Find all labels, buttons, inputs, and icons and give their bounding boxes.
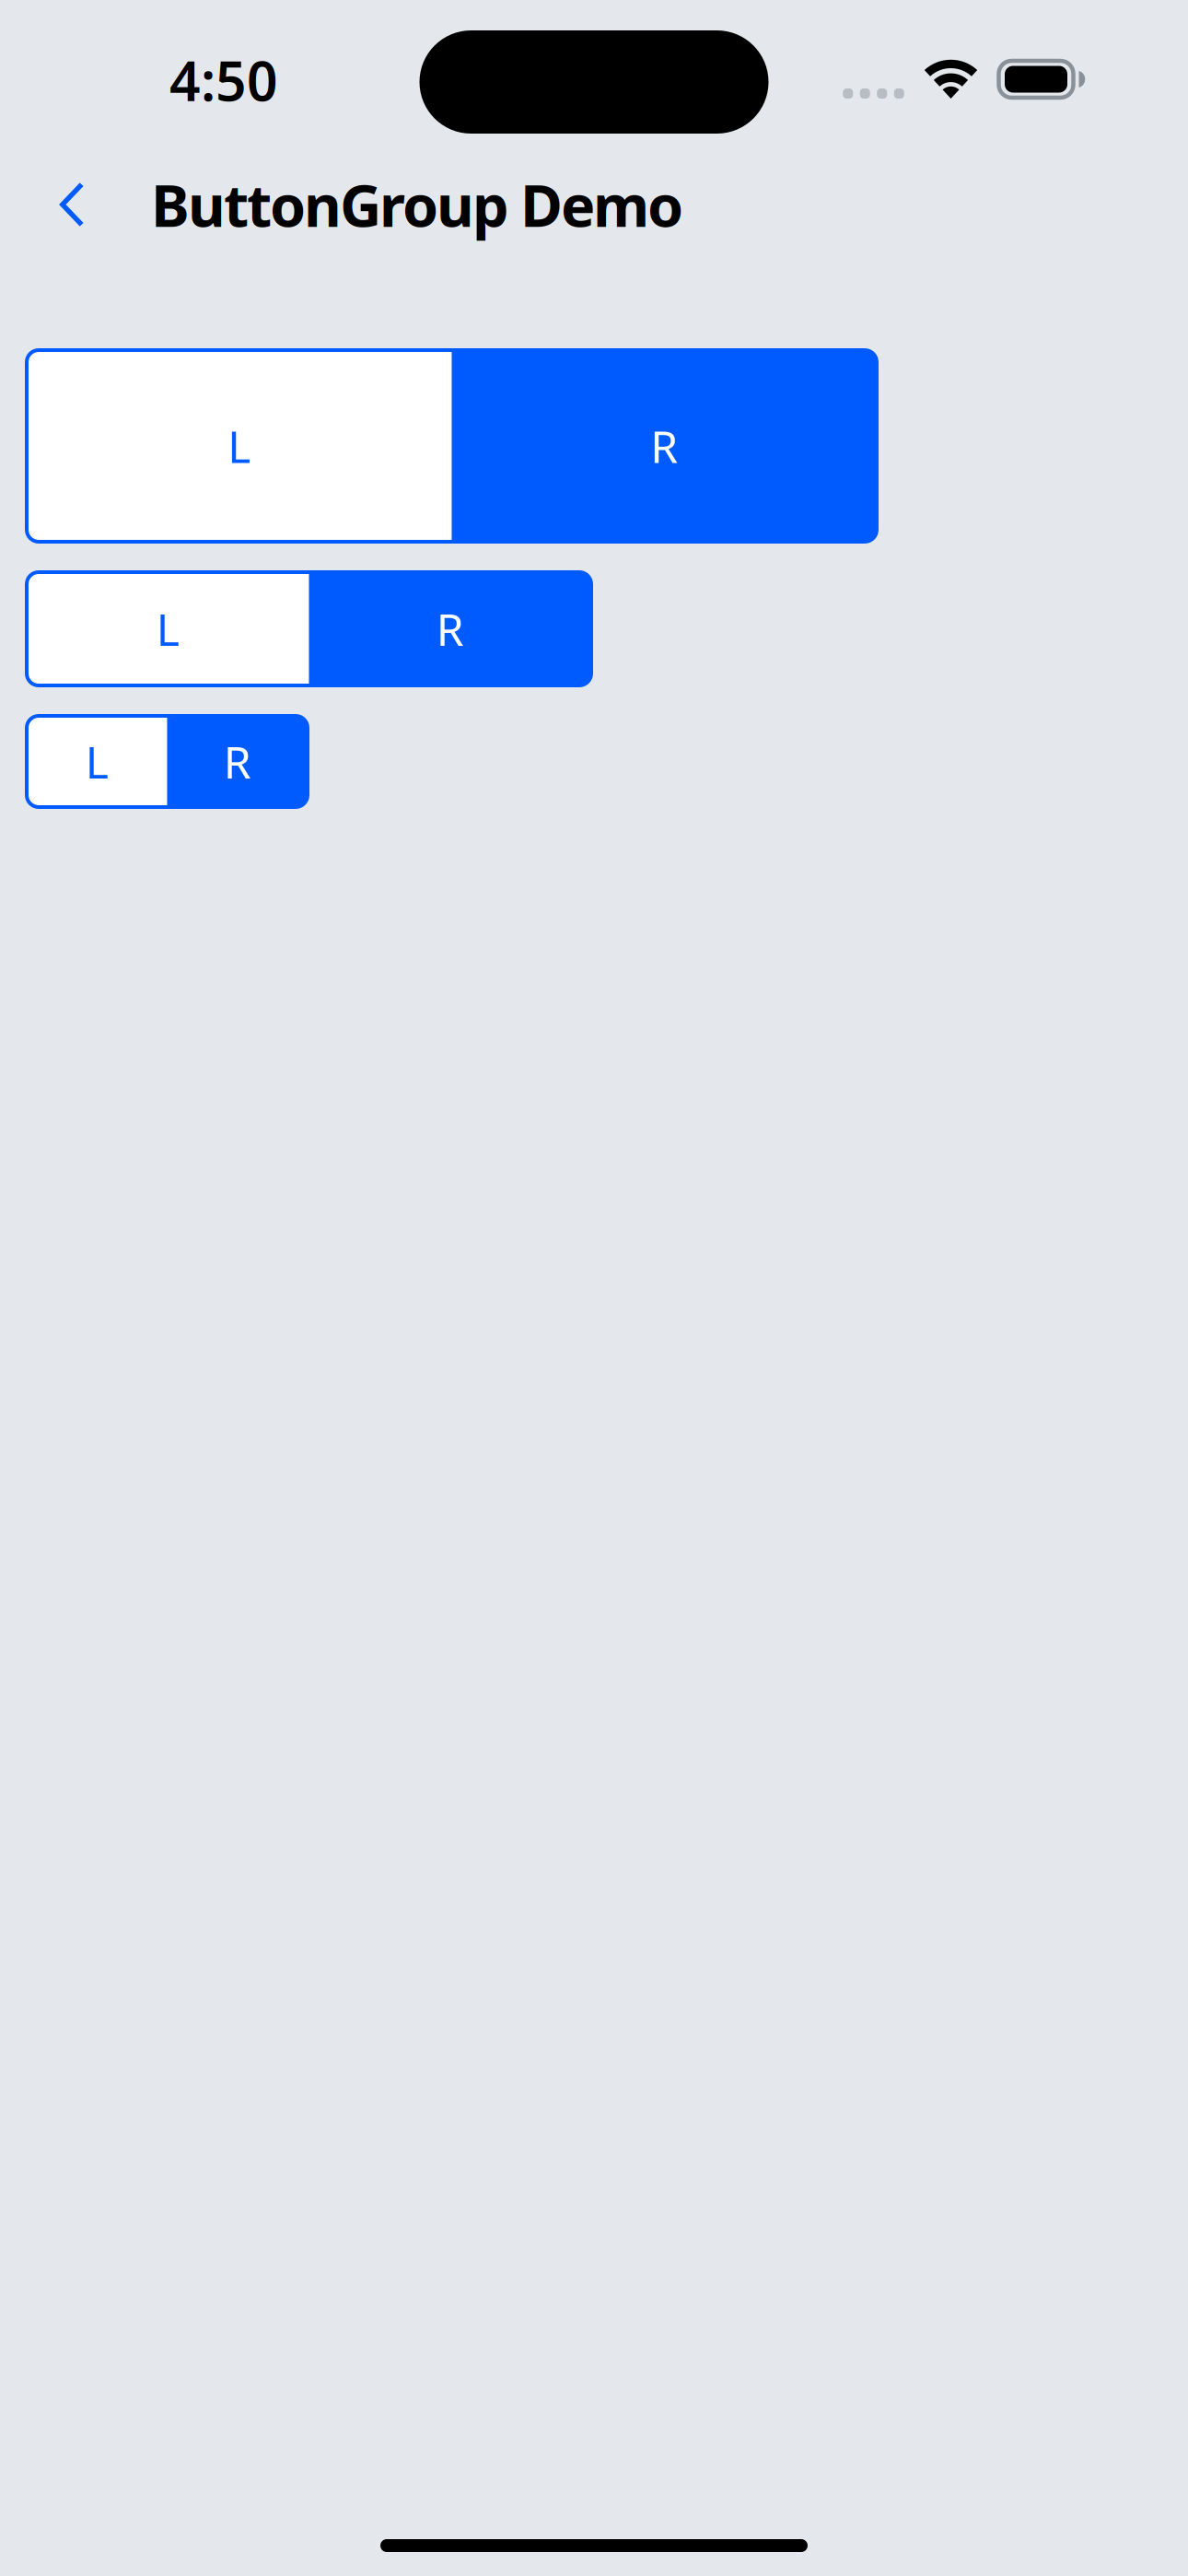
button[interactable]: L: [27, 572, 309, 685]
staticText: L: [228, 417, 251, 475]
staticText: R: [650, 417, 678, 475]
staticText: ButtonGroup Demo: [151, 166, 683, 243]
staticText: L: [85, 732, 108, 791]
button[interactable]: Back: [29, 153, 114, 256]
button[interactable]: R: [167, 716, 308, 807]
button[interactable]: L: [27, 350, 452, 542]
button[interactable]: L: [27, 716, 167, 807]
staticText: R: [224, 732, 251, 791]
staticText: R: [436, 599, 464, 658]
button[interactable]: R: [452, 350, 877, 542]
staticText: 4:50: [169, 44, 278, 116]
button[interactable]: R: [309, 572, 591, 685]
staticText: L: [156, 599, 179, 658]
